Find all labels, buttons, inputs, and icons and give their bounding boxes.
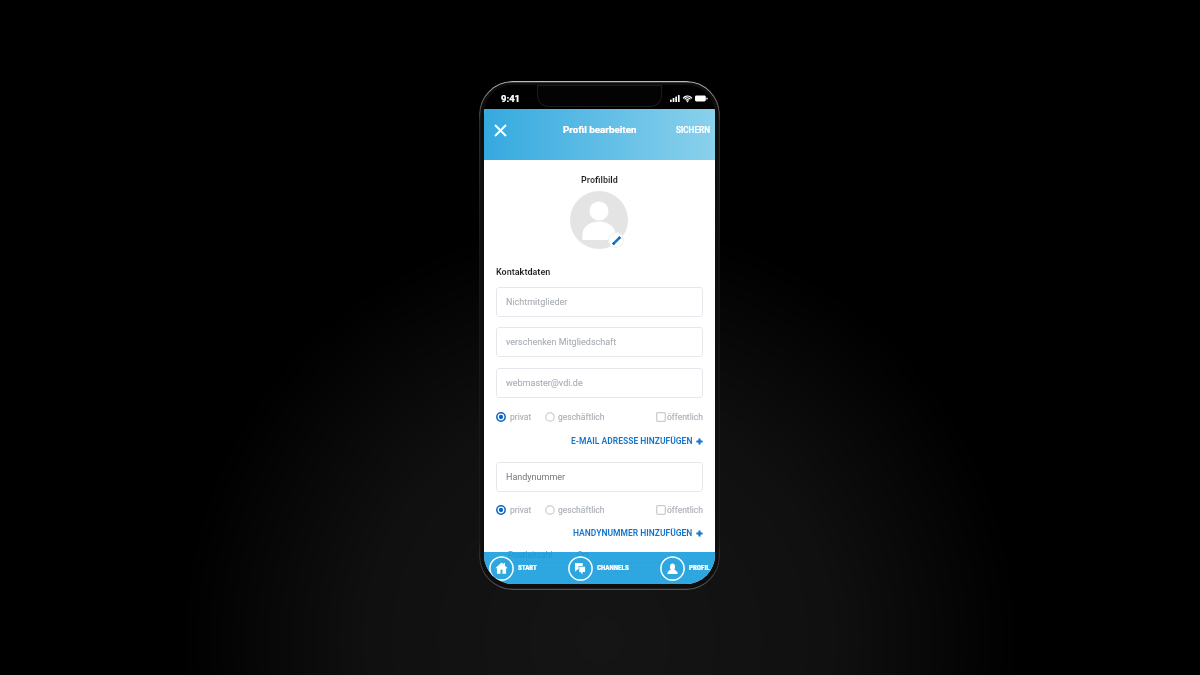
button[interactable]: privat xyxy=(496,503,532,517)
button[interactable]: privat xyxy=(496,410,532,424)
button[interactable]: öffentlich xyxy=(656,503,703,517)
button[interactable]: HANDYNUMMER HINZUFÜGEN xyxy=(496,526,703,540)
button[interactable]: webmaster@vdi.de xyxy=(496,368,703,398)
staticText: CHANNELS xyxy=(597,564,629,572)
button[interactable]: CHANNELS xyxy=(568,552,629,584)
staticText: geschäftlich xyxy=(558,505,605,515)
staticText: Profilbild xyxy=(581,175,618,186)
staticText: E-MAIL ADRESSE HINZUFÜGEN xyxy=(571,436,693,446)
staticText: HANDYNUMMER HINZUFÜGEN xyxy=(573,528,693,538)
staticText: Profil bearbeiten xyxy=(563,124,637,135)
staticText: PROFIL xyxy=(689,564,710,572)
button[interactable]: E-MAIL ADRESSE HINZUFÜGEN xyxy=(496,434,703,448)
button[interactable]: Handynummer xyxy=(496,462,703,492)
staticText: öffentlich xyxy=(667,412,703,422)
staticText: Handynummer xyxy=(506,472,566,483)
staticText: 9:41 xyxy=(501,93,521,104)
button[interactable]: Profilbild bearbeiten xyxy=(608,232,624,248)
button[interactable]: PROFIL xyxy=(660,552,710,584)
staticText: webmaster@vdi.de xyxy=(506,378,583,389)
button[interactable]: öffentlich xyxy=(656,410,703,424)
staticText: privat xyxy=(510,412,532,422)
staticText: verschenken Mitgliedschaft xyxy=(506,337,617,348)
staticText: SICHERN xyxy=(676,125,710,135)
staticText: Postleitzahl xyxy=(508,550,553,560)
button[interactable]: verschenken Mitgliedschaft xyxy=(496,327,703,357)
button[interactable]: SICHERN xyxy=(670,117,715,143)
staticText: privat xyxy=(510,505,532,515)
button[interactable]: Nichtmitglieder xyxy=(496,287,703,317)
button[interactable]: START xyxy=(489,552,537,584)
staticText: geschäftlich xyxy=(558,412,605,422)
staticText: Kontaktdaten xyxy=(496,267,551,278)
button[interactable]: geschäftlich xyxy=(545,503,605,517)
staticText: Ort xyxy=(577,550,589,560)
button[interactable]: Schliessen xyxy=(488,118,512,142)
staticText: START xyxy=(518,564,537,572)
staticText: Nichtmitglieder xyxy=(506,297,568,308)
staticText: öffentlich xyxy=(667,505,703,515)
button[interactable]: geschäftlich xyxy=(545,410,605,424)
